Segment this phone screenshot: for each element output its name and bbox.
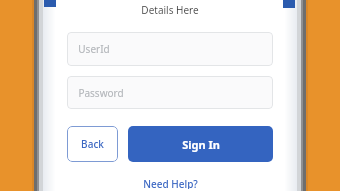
button[interactable]: UserId [67, 32, 273, 66]
staticText: Back [81, 137, 104, 151]
staticText: Password [78, 86, 124, 100]
staticText: UserId [78, 42, 110, 56]
staticText: Sign In [182, 137, 220, 152]
staticText: Need Help? [143, 177, 198, 189]
staticText: Details Here [141, 3, 199, 17]
button[interactable]: Back [67, 126, 118, 162]
button[interactable]: Password [67, 76, 273, 109]
button[interactable]: Need Help? [143, 177, 198, 189]
button[interactable]: Sign In [128, 126, 273, 162]
